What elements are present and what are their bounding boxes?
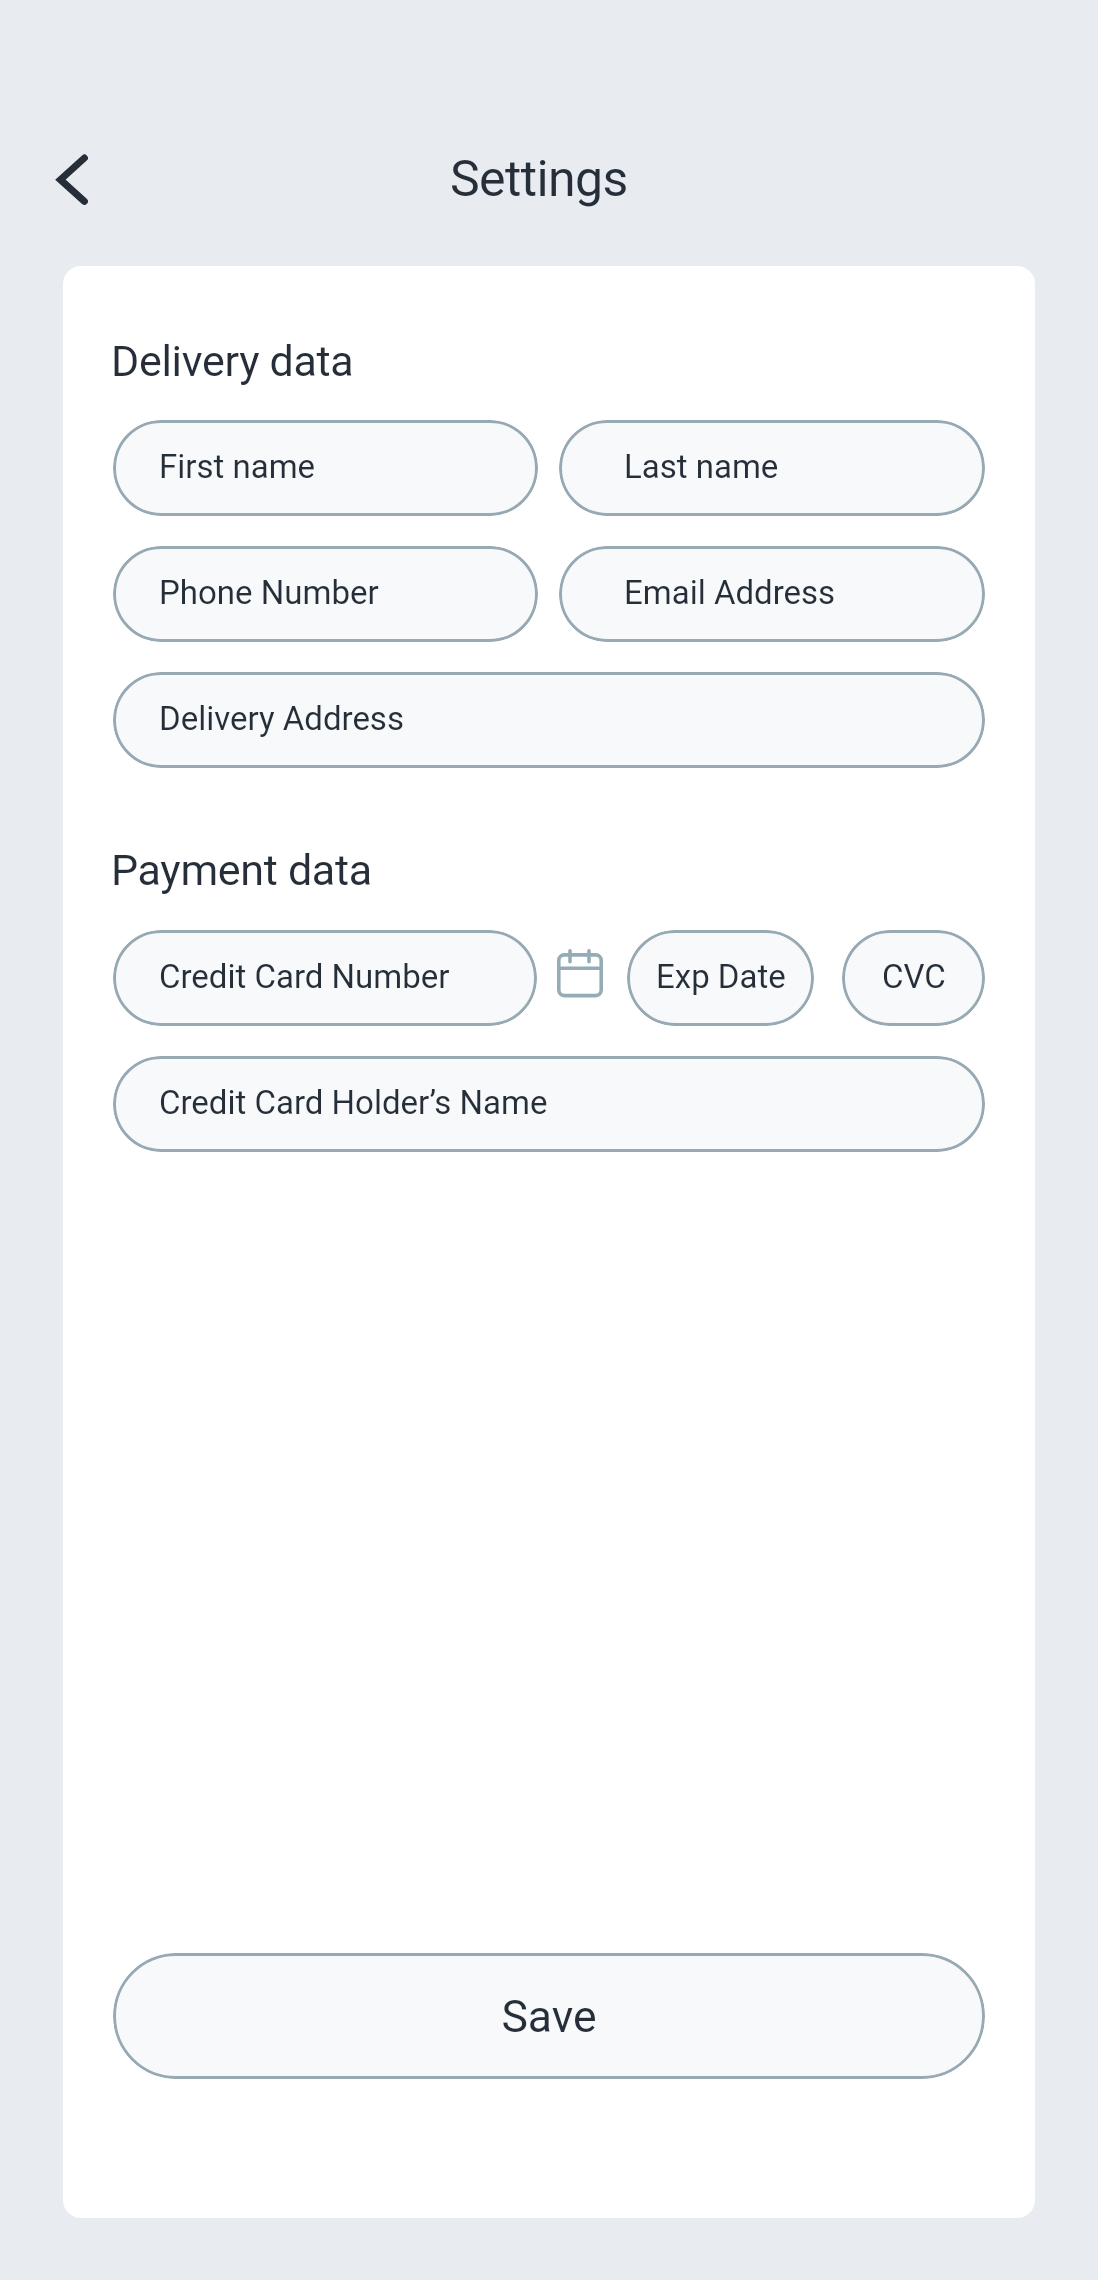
button[interactable]: CVC <box>842 930 985 1026</box>
staticText: Delivery Address <box>159 699 404 738</box>
button[interactable]: First name <box>113 420 538 516</box>
button[interactable]: Email Address <box>559 546 985 642</box>
button[interactable]: Back <box>27 135 117 225</box>
staticText: Credit Card Holder’s Name <box>159 1083 548 1122</box>
staticText: Phone Number <box>159 573 379 612</box>
staticText: Save <box>501 1991 597 2043</box>
staticText: Settings <box>450 150 628 209</box>
staticText: Last name <box>624 447 779 486</box>
staticText: First name <box>159 447 316 486</box>
staticText: Credit Card Number <box>159 957 450 996</box>
button[interactable]: Pick date <box>557 930 603 1026</box>
button[interactable]: Phone Number <box>113 546 538 642</box>
button[interactable]: Exp Date <box>627 930 814 1026</box>
staticText: Delivery data <box>111 336 354 386</box>
staticText: Payment data <box>111 845 372 895</box>
button[interactable]: Delivery Address <box>113 672 985 768</box>
button[interactable]: Save <box>113 1953 985 2079</box>
button[interactable]: Last name <box>559 420 985 516</box>
staticText: Email Address <box>624 573 836 612</box>
button[interactable]: Credit Card Number <box>113 930 537 1026</box>
button[interactable]: Credit Card Holder’s Name <box>113 1056 985 1152</box>
staticText: CVC <box>882 957 946 996</box>
staticText: Exp Date <box>656 957 786 996</box>
